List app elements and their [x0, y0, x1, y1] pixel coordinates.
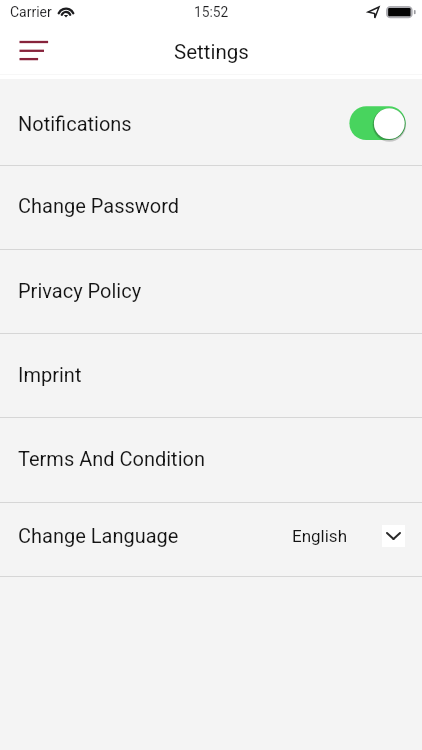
staticText: English [292, 526, 348, 546]
button[interactable]: Imprint [0, 334, 422, 417]
button[interactable]: Open navigation menu [14, 36, 50, 62]
button[interactable]: Notifications enabled [349, 105, 408, 140]
staticText: Change Password [18, 194, 180, 217]
staticText: Notifications [18, 112, 132, 135]
staticText: Terms And Condition [18, 447, 205, 470]
button[interactable]: Privacy Policy [0, 250, 422, 334]
staticText: Privacy Policy [18, 279, 142, 302]
staticText: 15:52 [194, 4, 229, 20]
button[interactable]: Select language [382, 525, 405, 547]
button[interactable]: Terms And Condition [0, 418, 422, 502]
staticText: Carrier [10, 4, 52, 20]
button[interactable]: Change Password [0, 166, 422, 249]
staticText: Imprint [18, 363, 82, 386]
button[interactable]: Notifications [0, 79, 422, 165]
staticText: Settings [174, 40, 249, 64]
button[interactable]: Change Language [0, 503, 422, 577]
staticText: Change Language [18, 524, 179, 547]
